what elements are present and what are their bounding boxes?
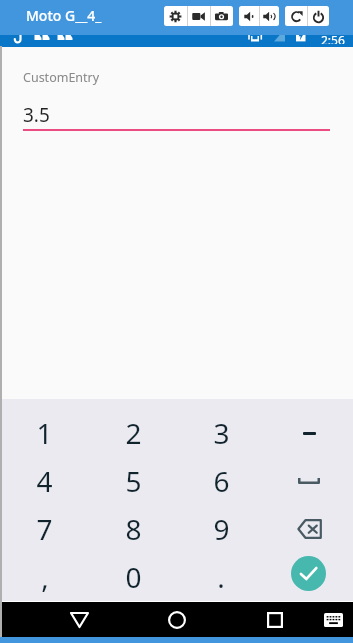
button[interactable]: , (0, 553, 89, 601)
staticText: Moto G__4_ (26, 6, 102, 25)
button[interactable]: 0 (89, 553, 177, 601)
button[interactable]: . (177, 553, 265, 601)
button[interactable] (265, 457, 353, 505)
button[interactable]: Confirm (265, 553, 353, 601)
button[interactable]: 2 (89, 409, 177, 457)
button[interactable]: 1 (0, 409, 89, 457)
button[interactable]: 6 (177, 457, 265, 505)
staticText: 9 (213, 510, 230, 548)
button[interactable]: power (307, 6, 329, 26)
button[interactable]: Switch keyboard (313, 602, 353, 637)
staticText: 1 (36, 414, 53, 452)
staticText: 2 (125, 414, 142, 452)
staticText: 2:56 (321, 35, 345, 44)
button[interactable]: vol+ (259, 6, 279, 26)
button[interactable]: 9 (177, 505, 265, 553)
button[interactable]: vol- (239, 6, 259, 26)
button[interactable]: Confirm (291, 556, 326, 591)
button[interactable]: rotate (285, 6, 307, 26)
staticText: , (41, 558, 49, 596)
button[interactable] (265, 409, 353, 457)
button[interactable]: 7 (0, 505, 89, 553)
button[interactable]: Recents (251, 602, 299, 637)
button[interactable]: gear (164, 6, 187, 26)
staticText: 3 (213, 414, 230, 452)
button[interactable]: Back (55, 602, 103, 637)
button[interactable]: Home (153, 602, 201, 637)
staticText: 3.5 (23, 102, 50, 128)
staticText: CustomEntry (23, 69, 100, 86)
button[interactable]: camera (210, 6, 233, 26)
staticText: 6 (213, 462, 230, 500)
button[interactable]: 4 (0, 457, 89, 505)
button[interactable]: 8 (89, 505, 177, 553)
button[interactable]: 5 (89, 457, 177, 505)
staticText: 5 (125, 462, 142, 500)
button[interactable] (265, 505, 353, 553)
staticText: 7 (36, 510, 53, 548)
button[interactable]: video (187, 6, 210, 26)
staticText: . (217, 558, 225, 596)
staticText: 8 (125, 510, 142, 548)
button[interactable]: 3 (177, 409, 265, 457)
staticText: 4 (36, 462, 53, 500)
staticText: 0 (125, 558, 142, 596)
